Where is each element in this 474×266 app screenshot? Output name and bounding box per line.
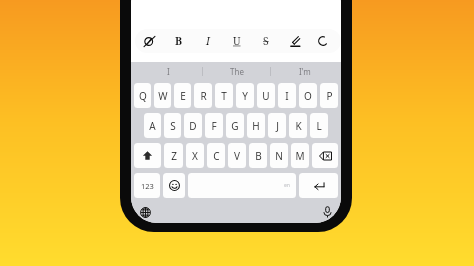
button[interactable]: Change language — [136, 203, 154, 221]
staticText: Q — [139, 89, 147, 103]
button[interactable]: P — [320, 83, 338, 108]
button[interactable]: L — [310, 113, 328, 138]
button[interactable]: I — [278, 83, 296, 108]
staticText: M — [295, 149, 305, 163]
button[interactable]: Shift — [134, 143, 161, 168]
staticText: E — [180, 89, 186, 103]
staticText: X — [192, 149, 198, 163]
staticText: 123 — [141, 181, 154, 191]
staticText: N — [275, 149, 283, 163]
button[interactable]: G — [226, 113, 244, 138]
button[interactable]: O — [299, 83, 317, 108]
button[interactable]: A — [144, 113, 161, 138]
staticText: D — [189, 119, 197, 133]
staticText: I — [285, 89, 289, 103]
button[interactable]: D — [184, 113, 202, 138]
staticText: Z — [171, 149, 177, 163]
button[interactable]: S — [251, 29, 280, 53]
button[interactable]: The — [203, 63, 270, 80]
staticText: T — [221, 89, 227, 103]
button[interactable]: Q — [134, 83, 151, 108]
button[interactable]: Backspace — [312, 143, 338, 168]
button[interactable]: K — [289, 113, 307, 138]
staticText: I — [167, 66, 170, 77]
button[interactable]: Text color — [309, 29, 338, 53]
button[interactable]: N — [270, 143, 288, 168]
button[interactable]: Z — [164, 143, 183, 168]
button[interactable]: B — [164, 29, 193, 53]
button[interactable]: Y — [236, 83, 254, 108]
staticText: S — [263, 34, 269, 48]
button[interactable]: X — [186, 143, 204, 168]
button[interactable]: Clear formatting — [135, 29, 164, 53]
button[interactable]: Voice input — [318, 203, 336, 221]
button[interactable]: 123 — [134, 173, 160, 198]
button[interactable]: Return — [299, 173, 338, 198]
button[interactable]: V — [228, 143, 246, 168]
button[interactable]: E — [174, 83, 191, 108]
staticText: R — [200, 89, 207, 103]
staticText: B — [255, 149, 262, 163]
button[interactable]: B — [249, 143, 267, 168]
staticText: U — [262, 89, 270, 103]
staticText: C — [213, 149, 220, 163]
button[interactable]: U — [257, 83, 275, 108]
staticText: I'm — [299, 66, 311, 77]
staticText: H — [252, 119, 260, 133]
staticText: G — [231, 119, 239, 133]
button[interactable]: J — [268, 113, 286, 138]
button[interactable]: T — [215, 83, 233, 108]
staticText: P — [326, 89, 333, 103]
button[interactable]: F — [205, 113, 223, 138]
button[interactable]: Space — [188, 173, 296, 198]
staticText: K — [295, 119, 302, 133]
staticText: B — [175, 34, 183, 48]
staticText: S — [170, 119, 176, 133]
button[interactable]: I'm — [271, 63, 338, 80]
staticText: J — [276, 119, 279, 133]
button[interactable]: C — [207, 143, 225, 168]
button[interactable]: Highlight — [280, 29, 309, 53]
staticText: O — [304, 89, 312, 103]
staticText: en — [284, 182, 290, 189]
staticText: A — [149, 119, 156, 133]
button[interactable]: I — [193, 29, 222, 53]
button[interactable]: W — [154, 83, 171, 108]
staticText: F — [211, 119, 217, 133]
staticText: U — [233, 34, 241, 48]
button[interactable]: M — [291, 143, 309, 168]
button[interactable]: R — [194, 83, 212, 108]
button[interactable]: H — [247, 113, 265, 138]
staticText: L — [316, 119, 322, 133]
staticText: W — [158, 89, 168, 103]
staticText: I — [206, 34, 210, 48]
button[interactable]: U — [222, 29, 251, 53]
staticText: Y — [242, 89, 248, 103]
staticText: The — [230, 66, 244, 77]
staticText: V — [234, 149, 240, 163]
button[interactable]: S — [164, 113, 181, 138]
button[interactable]: Emoji — [163, 173, 185, 198]
button[interactable]: I — [134, 63, 202, 80]
